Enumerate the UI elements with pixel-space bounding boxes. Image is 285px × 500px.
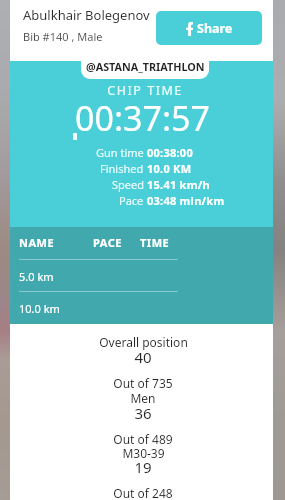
staticText: 5.0 km — [19, 269, 54, 284]
staticText: PACE — [93, 235, 122, 250]
staticText: 10.0 km — [19, 301, 60, 316]
staticText: TIME — [140, 235, 170, 250]
button[interactable]: 10.0 km — [10, 291, 273, 323]
staticText: Overall position — [99, 334, 188, 350]
staticText: Out of 248 — [113, 485, 173, 500]
staticText: 10.0 KM — [147, 161, 192, 176]
staticText: 19 — [134, 457, 152, 477]
staticText: Pace — [119, 193, 144, 208]
button[interactable]: Share — [156, 11, 262, 45]
staticText: Abulkhair Bolegenov — [23, 6, 150, 24]
staticText: CHIP TIME — [107, 82, 183, 99]
staticText: 00:37:57 — [75, 95, 210, 141]
staticText: 15.41 km/h — [147, 177, 210, 192]
staticText: Out of 735 — [113, 375, 173, 391]
staticText: M30-39 — [122, 445, 165, 461]
button[interactable]: 5.0 km — [10, 259, 273, 291]
staticText: 00:38:00 — [147, 145, 193, 160]
staticText: Gun time — [96, 145, 144, 160]
staticText: 40 — [134, 347, 152, 367]
staticText: @ASTANA_TRIATHLON — [86, 61, 205, 74]
staticText: 36 — [134, 403, 152, 423]
staticText: Bib #140 , Male — [23, 29, 103, 44]
button[interactable]: @ASTANA_TRIATHLON — [81, 61, 209, 79]
staticText: Out of 489 — [113, 431, 173, 447]
staticText: 03:48 min/km — [147, 193, 225, 208]
staticText: NAME — [19, 235, 55, 250]
staticText: Share — [197, 20, 233, 37]
staticText: Men — [130, 390, 156, 406]
staticText: Finished — [100, 161, 144, 176]
staticText: Speed — [112, 177, 144, 192]
